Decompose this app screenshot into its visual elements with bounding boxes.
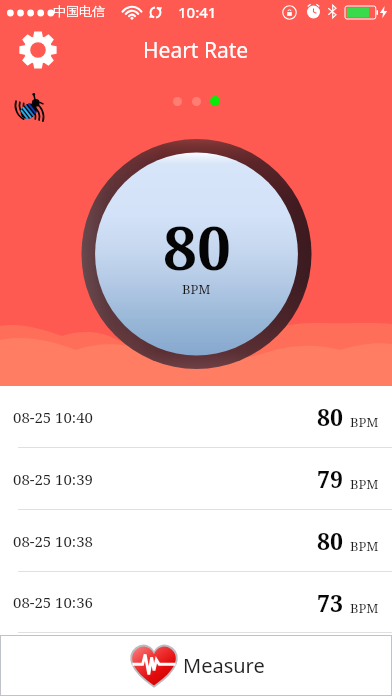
staticText: BPM: [182, 280, 211, 298]
staticText: BPM: [350, 413, 379, 431]
button[interactable]: 08-25 10:39: [0, 448, 392, 510]
staticText: 08-25 10:40: [13, 407, 93, 427]
button[interactable]: Vibration: [6, 87, 56, 133]
staticText: 80: [163, 206, 231, 288]
staticText: Heart Rate: [143, 36, 249, 65]
staticText: 79: [317, 463, 343, 494]
staticText: 73: [317, 587, 343, 618]
button[interactable]: 08-25 10:36: [0, 572, 392, 633]
button[interactable]: 08-25 10:38: [0, 510, 392, 572]
staticText: 80: [317, 401, 343, 432]
button[interactable]: [192, 97, 201, 106]
staticText: 08-25 10:36: [13, 592, 93, 612]
staticText: 10:41: [178, 2, 217, 22]
button[interactable]: [173, 97, 182, 106]
staticText: BPM: [350, 475, 379, 493]
staticText: BPM: [350, 537, 379, 555]
button[interactable]: Measure: [0, 635, 392, 696]
staticText: 08-25 10:39: [13, 469, 93, 489]
staticText: BPM: [350, 599, 379, 617]
staticText: 08-25 10:38: [13, 531, 93, 551]
staticText: 中国电信: [53, 3, 105, 19]
button[interactable]: 08-25 10:40: [0, 386, 392, 448]
button[interactable]: Settings: [11, 25, 65, 75]
button[interactable]: [210, 96, 220, 106]
staticText: Measure: [183, 652, 265, 679]
staticText: 80: [317, 525, 343, 556]
